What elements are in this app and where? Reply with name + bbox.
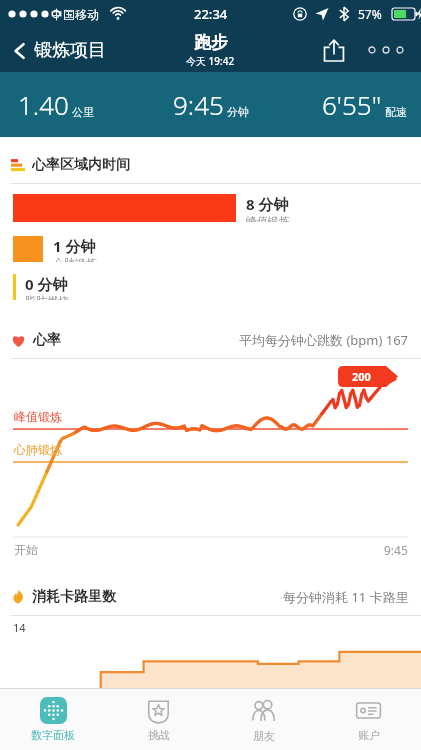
staticText: 峰值锻炼 [246, 214, 290, 222]
staticText: 8 分钟 [246, 194, 289, 214]
button[interactable]: 朋友 [211, 689, 316, 750]
staticText: 锻炼项目 [34, 39, 106, 62]
staticText: 配速 [385, 105, 407, 119]
button[interactable]: More options [361, 33, 411, 67]
button[interactable]: 锻炼项目 [8, 35, 110, 66]
staticText: 朋友 [253, 729, 275, 743]
staticText: 0 分钟 [25, 274, 68, 294]
staticText: 脂肪燃烧 [25, 294, 69, 300]
staticText: 心肺锻炼 [14, 442, 62, 457]
staticText: 14 [13, 620, 26, 635]
staticText: 57% [358, 6, 382, 22]
staticText: 1 分钟 [53, 236, 96, 256]
button[interactable]: 数字面板 [0, 689, 106, 750]
staticText: 消耗卡路里数 [32, 588, 116, 606]
button[interactable]: Share [317, 33, 351, 67]
staticText: 6'55" [322, 87, 382, 122]
staticText: 每分钟消耗 11 卡路里 [283, 588, 409, 606]
staticText: 心率区域内时间 [32, 156, 130, 174]
staticText: 公里 [72, 105, 94, 119]
staticText: 1.40 [18, 87, 69, 122]
staticText: 200 [352, 369, 371, 384]
staticText: 挑战 [148, 728, 170, 742]
staticText: 数字面板 [31, 728, 75, 742]
staticText: 9:45 [384, 542, 408, 558]
staticText: 22:34 [194, 5, 228, 23]
button[interactable]: 挑战 [106, 689, 211, 750]
staticText: 峰值锻炼 [14, 409, 62, 424]
staticText: 分钟 [227, 105, 249, 119]
staticText: 账户 [358, 728, 380, 742]
staticText: 9:45 [173, 87, 224, 122]
button[interactable]: 账户 [316, 689, 421, 750]
staticText: 今天 19:42 [186, 54, 235, 68]
staticText: 心率 [33, 331, 61, 349]
staticText: 开始 [14, 542, 38, 557]
staticText: 中国移动 [51, 7, 99, 22]
staticText: 平均每分钟心跳数 (bpm) 167 [239, 331, 409, 349]
staticText: 心肺锻炼 [53, 256, 97, 262]
staticText: 跑步 [194, 32, 228, 53]
